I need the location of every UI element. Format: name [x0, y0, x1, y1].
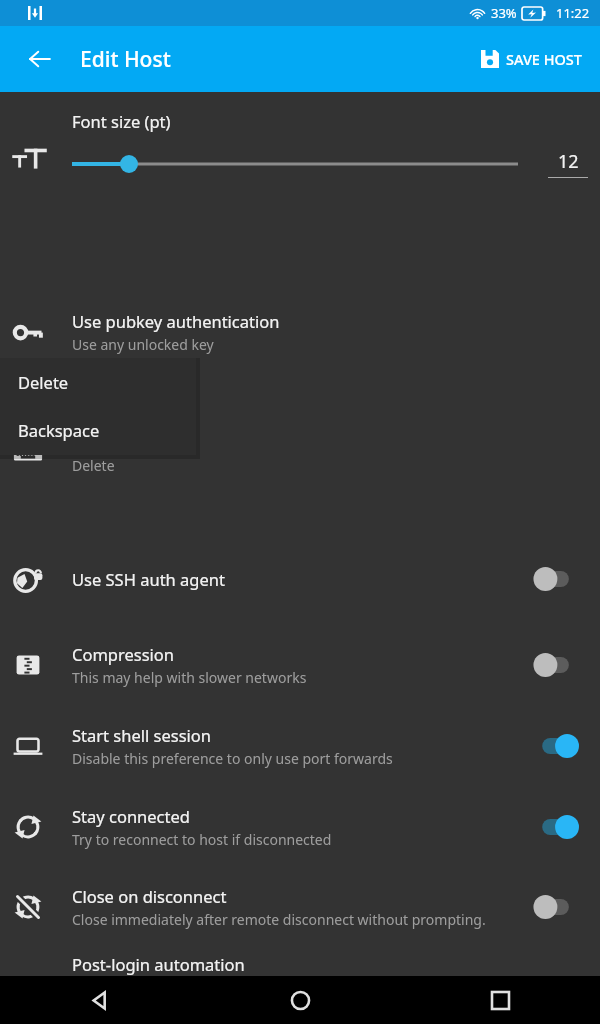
staticText: 33%	[491, 4, 517, 22]
staticText: 11:22	[556, 4, 590, 22]
staticText: Close on disconnect	[72, 885, 227, 907]
button[interactable]: Close on disconnect toggle	[530, 889, 582, 925]
other: Pubkey	[13, 317, 43, 347]
staticText: Close immediately after remote disconnec…	[72, 910, 486, 929]
other: Stay connected	[13, 812, 43, 842]
other: Close on disconnect	[13, 892, 43, 922]
button[interactable]: Recents	[400, 976, 600, 1024]
staticText: Commands to run on remote server once au…	[72, 978, 439, 997]
button[interactable]: Post-login automation	[0, 947, 600, 1024]
staticText: Font size (pt)	[72, 110, 171, 132]
button[interactable]: Pubkey	[0, 292, 600, 372]
staticText: 12	[558, 149, 579, 174]
staticText: Compression	[72, 643, 175, 665]
button[interactable]: Use SSH auth agent toggle	[530, 561, 582, 597]
staticText: DEL Key	[72, 431, 134, 453]
button[interactable]: SSH agent	[0, 534, 600, 624]
button[interactable]: SAVE HOST	[475, 41, 588, 77]
button[interactable]: Keyboard	[0, 372, 600, 534]
staticText: Disable this preference to only use port…	[72, 749, 393, 768]
other: SSH agent	[13, 564, 43, 594]
button[interactable]: Stay connected toggle	[530, 809, 582, 845]
button[interactable]: Delete	[0, 358, 196, 406]
button[interactable]: Backspace	[0, 406, 196, 454]
button[interactable]: Compression toggle	[530, 647, 582, 683]
staticText: Post-login automation	[72, 953, 245, 975]
staticText: Use pubkey authentication	[72, 310, 280, 332]
staticText: This may help with slower networks	[72, 668, 307, 687]
button[interactable]: Back	[18, 37, 62, 81]
staticText: Delete	[18, 371, 69, 393]
other: Shell session	[13, 731, 43, 761]
staticText: Delete	[72, 456, 115, 475]
other: Compression	[13, 650, 43, 680]
staticText: Edit Host	[80, 45, 171, 74]
button[interactable]: Close on disconnect	[0, 867, 600, 947]
button[interactable]: Home	[200, 976, 400, 1024]
button[interactable]: Shell session	[0, 705, 600, 786]
staticText: Start shell session	[72, 724, 211, 746]
button[interactable]: Start shell session toggle	[530, 728, 582, 764]
staticText: Use SSH auth agent	[72, 568, 225, 590]
button[interactable]: Stay connected	[0, 786, 600, 867]
other: Keyboard	[13, 438, 43, 468]
staticText: Stay connected	[72, 805, 190, 827]
button[interactable]: Back	[0, 976, 200, 1024]
staticText: Use any unlocked key	[72, 335, 214, 354]
button[interactable]: Font size (pt)	[0, 110, 600, 210]
staticText: SAVE HOST	[506, 49, 582, 69]
staticText: Try to reconnect to host if disconnected	[72, 830, 332, 849]
button[interactable]: Compression	[0, 624, 600, 705]
staticText: Backspace	[18, 419, 100, 441]
